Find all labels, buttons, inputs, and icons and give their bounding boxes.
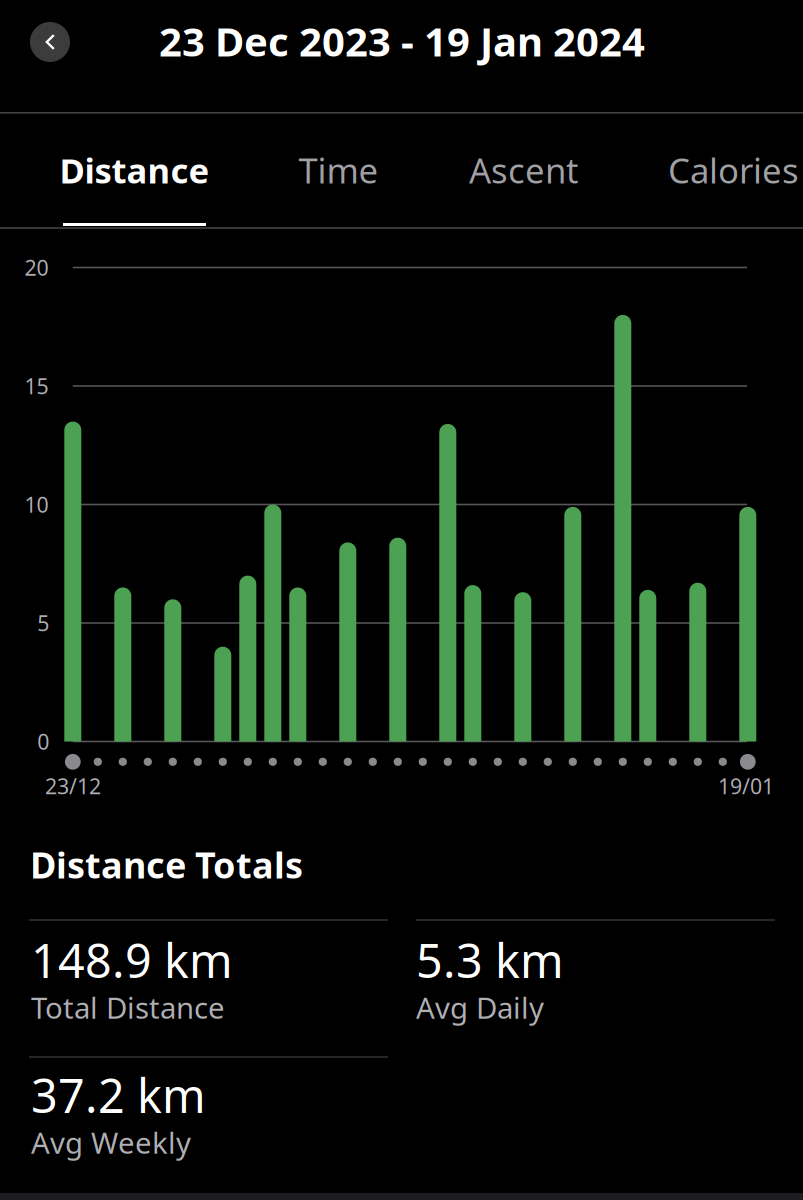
staticText: Total Distance (31, 988, 225, 1027)
staticText: 37.2 km (31, 1064, 206, 1126)
staticText: Avg Daily (416, 988, 544, 1027)
staticText: 15 (24, 372, 48, 400)
button[interactable]: Time (246, 113, 431, 227)
staticText: 5.3 km (416, 929, 564, 991)
staticText: 10 (24, 490, 48, 519)
staticText: 23 Dec 2023 - 19 Jan 2024 (159, 14, 645, 67)
staticText: 19/01 (718, 772, 774, 800)
button[interactable]: Back (30, 22, 70, 62)
staticText: Distance Totals (30, 841, 303, 888)
staticText: 5 (37, 609, 49, 637)
button[interactable]: Distance (42, 113, 227, 227)
staticText: 0 (37, 727, 49, 756)
staticText: Time (298, 147, 378, 193)
staticText: Ascent (469, 147, 579, 193)
staticText: Calories (668, 147, 799, 193)
staticText: Avg Weekly (31, 1123, 191, 1162)
staticText: Distance (59, 147, 209, 193)
button[interactable]: Ascent (431, 113, 616, 227)
staticText: 23/12 (45, 772, 101, 800)
button[interactable]: Calories (641, 113, 803, 227)
staticText: 148.9 km (31, 929, 233, 991)
staticText: 20 (24, 253, 48, 282)
